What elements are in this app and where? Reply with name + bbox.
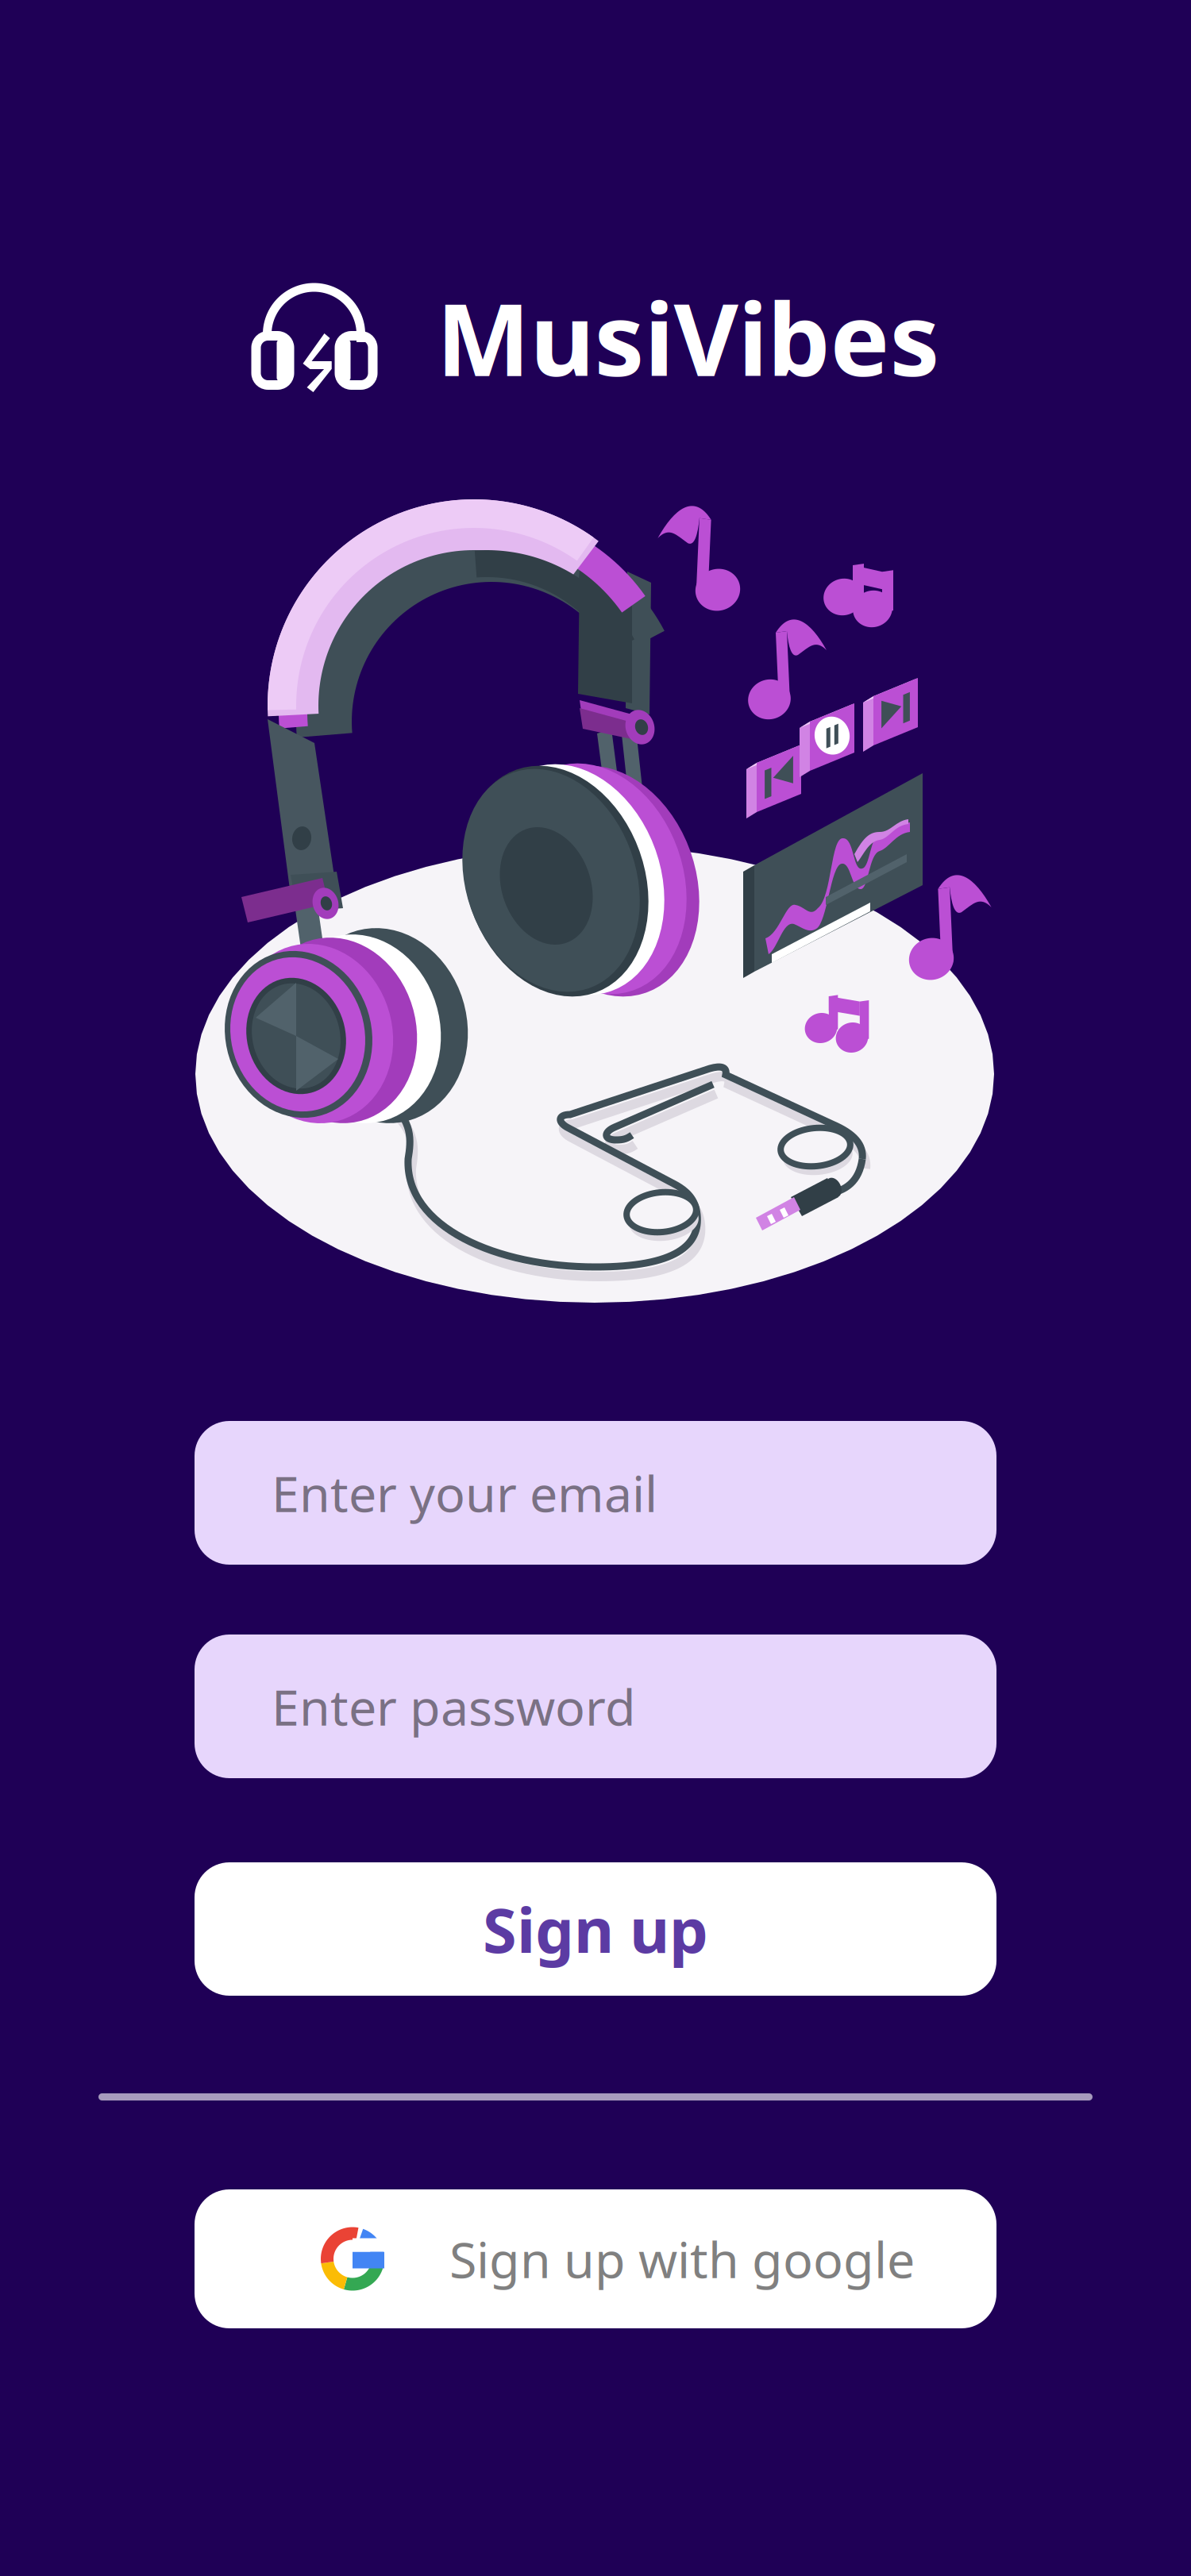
button[interactable]: Enter your email (195, 1421, 996, 1565)
button[interactable]: Sign up with google (195, 2189, 996, 2328)
staticText: Sign up (483, 1888, 708, 1970)
staticText: MusiVibes (436, 271, 940, 403)
button[interactable]: Sign up (195, 1862, 996, 1996)
staticText: Enter password (272, 1673, 636, 1739)
button[interactable]: Enter password (195, 1635, 996, 1778)
staticText: Sign up with google (449, 2226, 915, 2292)
staticText: Enter your email (272, 1460, 657, 1526)
